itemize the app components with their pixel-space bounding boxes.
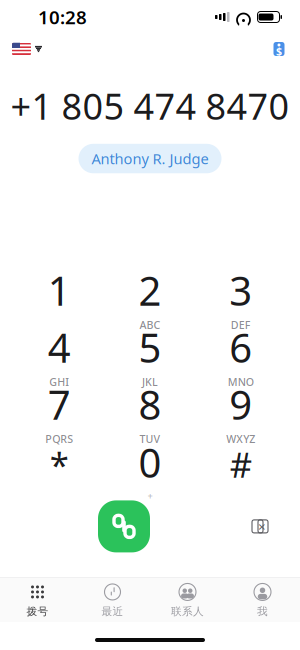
button[interactable]: Anthony R. Judge (78, 144, 221, 173)
staticText: 7 (48, 378, 71, 431)
staticText: 4 (48, 321, 71, 374)
button[interactable]: 6 (195, 326, 286, 383)
staticText: 8 (138, 378, 161, 431)
button[interactable]: 2 (105, 269, 195, 326)
staticText: 2 (138, 264, 161, 317)
staticText: GHI (49, 375, 69, 389)
staticText: 0 (138, 436, 161, 489)
staticText: WXYZ (226, 432, 255, 446)
staticText: * (50, 441, 69, 487)
staticText: JKL (142, 375, 158, 389)
staticText: 6 (229, 321, 252, 374)
staticText: + (147, 490, 152, 502)
staticText: 1 (48, 264, 71, 317)
button[interactable]: 最近 (75, 578, 150, 622)
button[interactable]: 拨号 (0, 578, 75, 622)
button[interactable]: 7 (14, 383, 105, 440)
button[interactable]: * (14, 440, 105, 497)
button[interactable]: Select country (8, 39, 46, 59)
staticText: 10:28 (38, 5, 87, 29)
button[interactable]: Delete (234, 500, 286, 552)
button[interactable]: 0 (105, 440, 195, 497)
staticText: DEF (231, 318, 251, 332)
button[interactable]: 联系人 (150, 578, 225, 622)
staticText: TUV (139, 432, 160, 446)
staticText: 拨号 (26, 605, 48, 618)
staticText: 联系人 (171, 605, 204, 618)
staticText: Anthony R. Judge (91, 149, 208, 168)
button[interactable]: 4 (14, 326, 105, 383)
button[interactable]: Rates (268, 37, 290, 61)
staticText: × (258, 517, 266, 535)
staticText: 最近 (101, 605, 123, 618)
button[interactable]: 我 (225, 578, 300, 622)
staticText: # (230, 441, 252, 487)
staticText: 9 (229, 378, 252, 431)
button[interactable]: Call (98, 500, 150, 552)
button[interactable]: 5 (105, 326, 195, 383)
staticText: +1 805 474 8470 (10, 82, 289, 130)
button[interactable]: # (195, 440, 286, 497)
staticText: 3 (229, 264, 252, 317)
button[interactable]: 3 (195, 269, 286, 326)
button[interactable]: 8 (105, 383, 195, 440)
staticText: PQRS (45, 432, 73, 446)
button[interactable]: 9 (195, 383, 286, 440)
staticText: $ (276, 44, 282, 58)
staticText: 5 (138, 321, 161, 374)
staticText: ABC (139, 318, 160, 332)
staticText: 我 (257, 605, 268, 618)
button[interactable]: 1 (14, 269, 105, 326)
staticText: MNO (228, 375, 254, 389)
